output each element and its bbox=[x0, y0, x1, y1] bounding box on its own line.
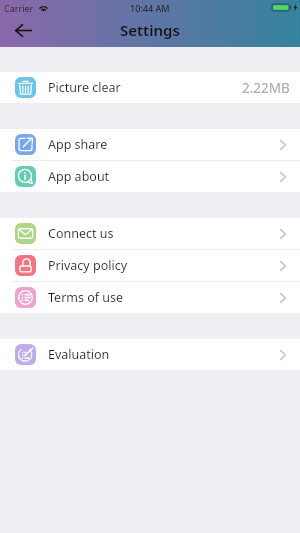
button[interactable]: Privacy policy bbox=[0, 250, 300, 281]
staticText: Carrier bbox=[4, 2, 34, 14]
button[interactable]: Evaluation bbox=[0, 339, 300, 370]
staticText: 2.22MB bbox=[242, 79, 290, 97]
staticText: Connect us bbox=[48, 225, 114, 242]
staticText: 10:44 AM bbox=[130, 2, 170, 14]
staticText: Evaluation bbox=[48, 346, 110, 363]
staticText: Picture clear bbox=[48, 79, 121, 96]
button[interactable]: Back bbox=[0, 18, 46, 43]
button[interactable]: Connect us bbox=[0, 218, 300, 249]
staticText: Terms of use bbox=[48, 289, 124, 306]
staticText: Settings bbox=[120, 20, 180, 40]
button[interactable]: App about bbox=[0, 161, 300, 192]
staticText: App about bbox=[48, 168, 110, 185]
button[interactable]: Picture clear bbox=[0, 72, 300, 103]
button[interactable]: App share bbox=[0, 129, 300, 160]
button[interactable]: Terms of use bbox=[0, 282, 300, 313]
staticText: Privacy policy bbox=[48, 257, 128, 274]
staticText: App share bbox=[48, 136, 108, 153]
